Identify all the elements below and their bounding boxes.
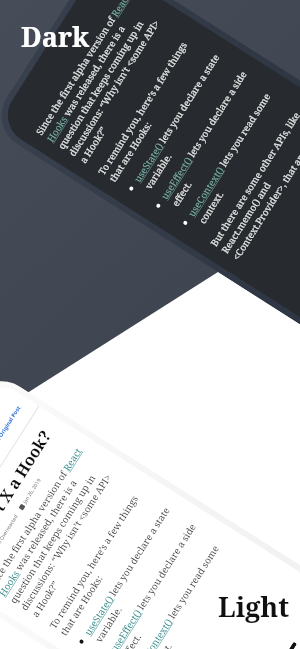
staticText: Since the first alpha version of React H… bbox=[0, 445, 129, 620]
staticText: useContext() lets you read some context. bbox=[185, 83, 289, 226]
staticText: Since the first alpha version of React H… bbox=[33, 0, 177, 166]
staticText: To remind you, here’s a few things that … bbox=[46, 484, 158, 638]
staticText: useEffect() lets you declare a side effe… bbox=[158, 66, 262, 209]
staticText: useState() lets you declare a state vari… bbox=[81, 502, 185, 645]
staticText: useContext() lets you read some context. bbox=[134, 535, 238, 649]
staticText: Light bbox=[218, 588, 290, 625]
staticText: Dark bbox=[21, 18, 90, 55]
staticText: Why Isn’t X a Hook? bbox=[0, 425, 56, 575]
staticText: useEffect() lets you declare a side effe… bbox=[107, 518, 211, 649]
staticText: Jan 26, 2019 bbox=[21, 477, 43, 505]
staticText: Dan Abramov’s Overreacted bbox=[0, 513, 20, 573]
staticText: To remind you, here’s a few things that … bbox=[95, 30, 206, 184]
staticText: useState() lets you declare a state vari… bbox=[131, 49, 235, 192]
button[interactable]: Read Original Post bbox=[0, 404, 22, 451]
staticText: But there are some other APIs, like Reac… bbox=[208, 102, 300, 263]
